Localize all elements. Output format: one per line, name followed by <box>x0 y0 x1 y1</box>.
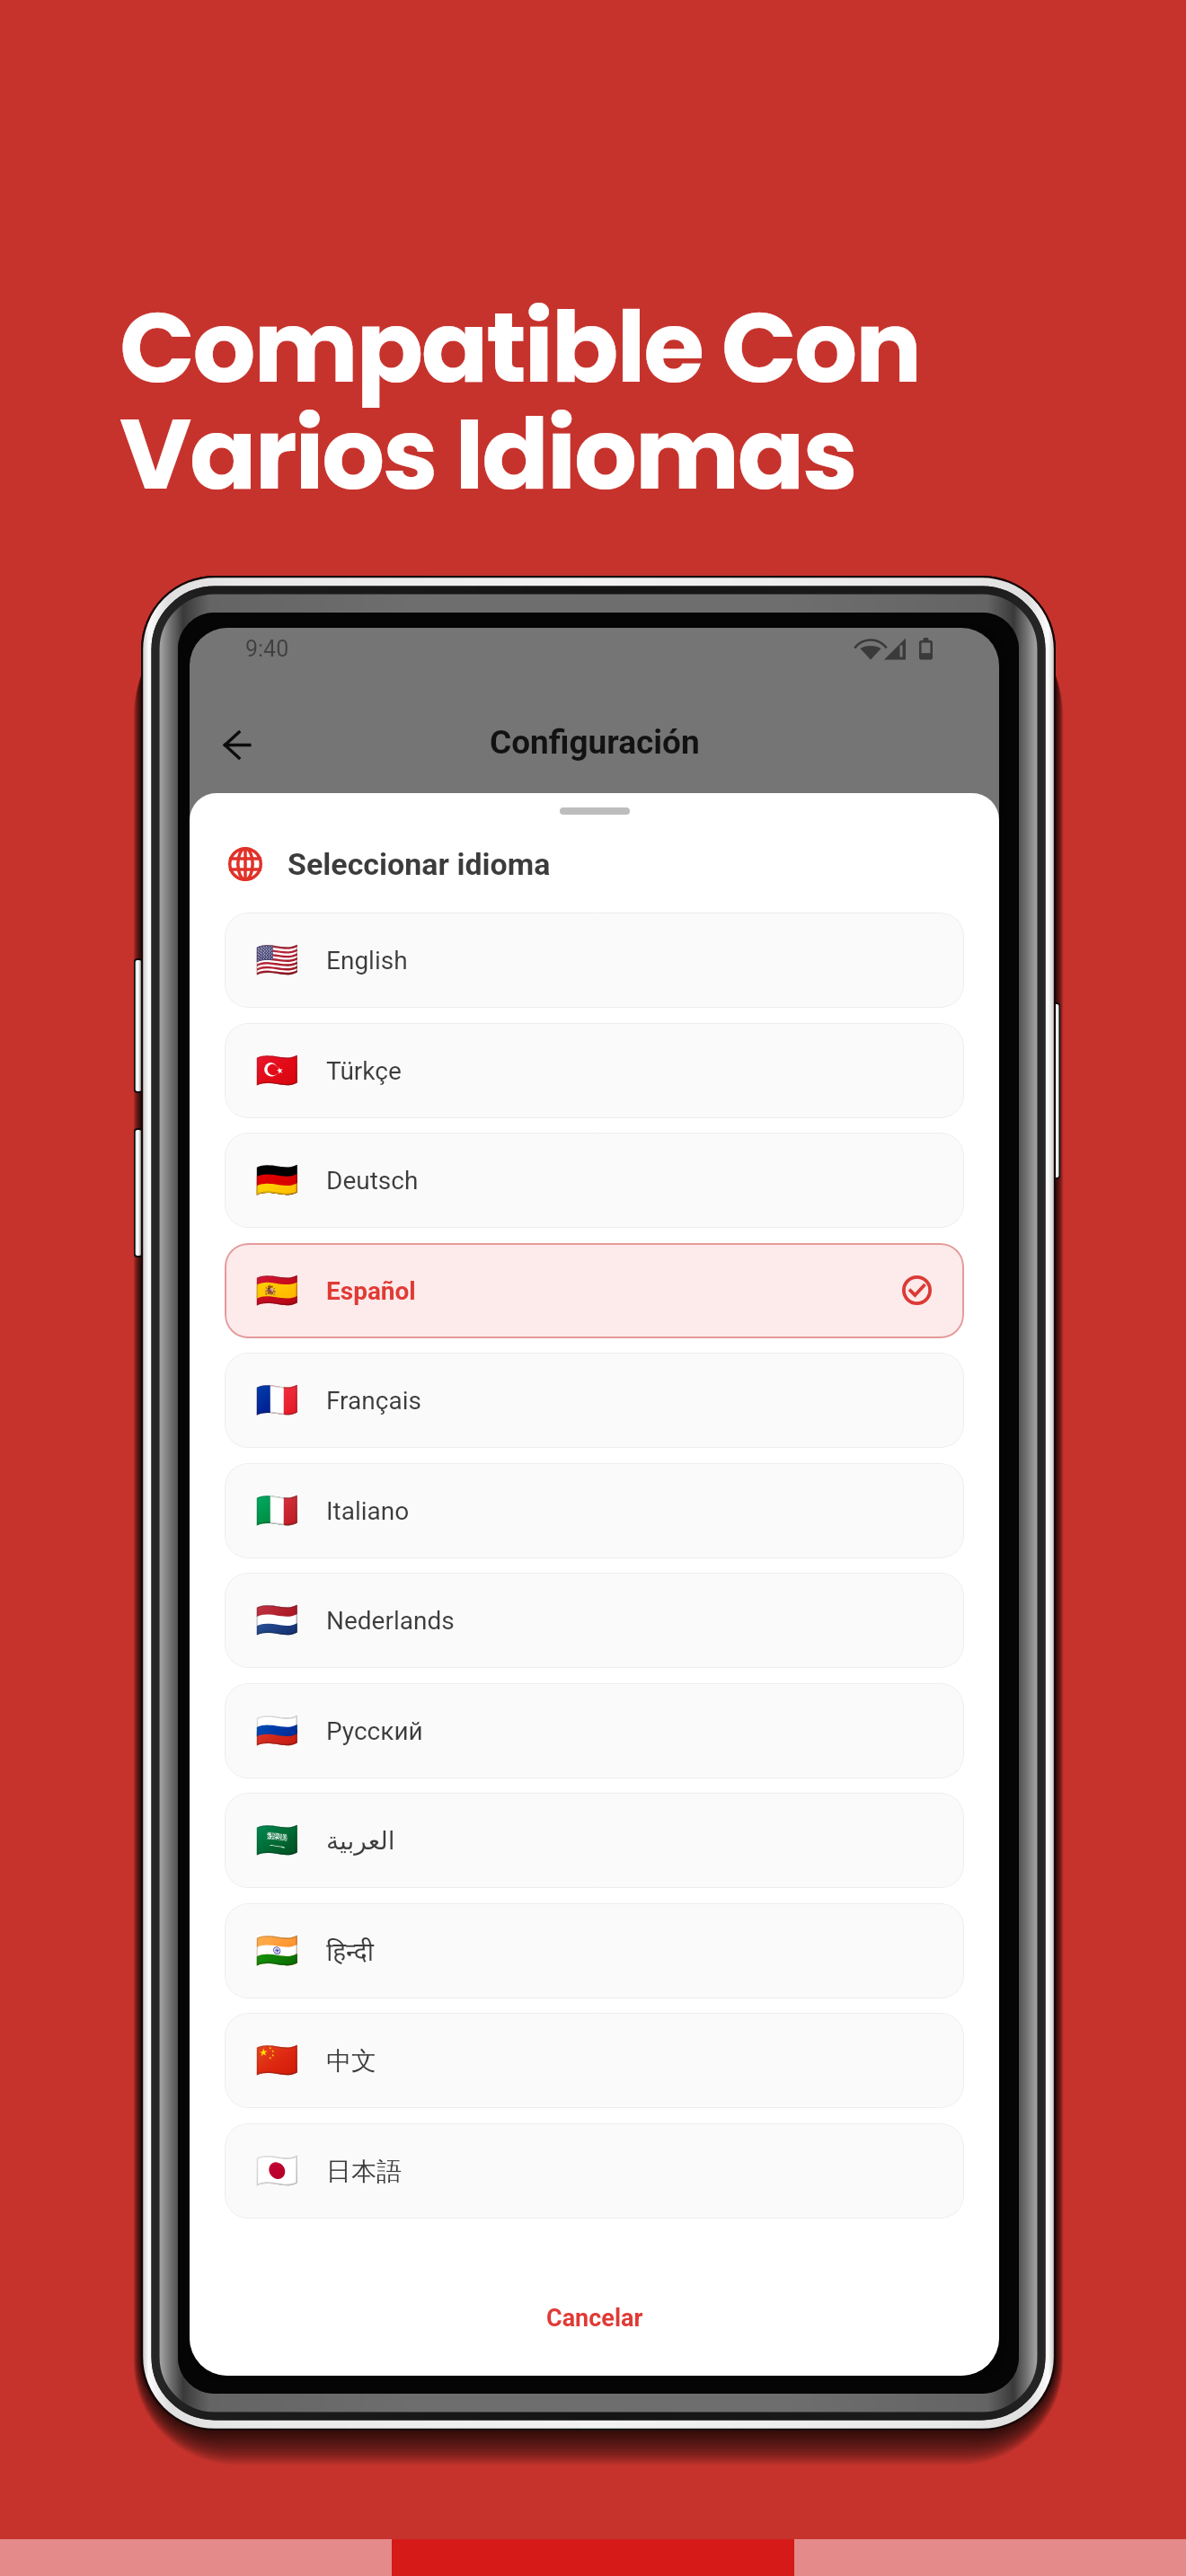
button[interactable]: Cancelar <box>546 2304 643 2333</box>
button[interactable]: 🇸🇦 <box>225 1793 964 1888</box>
staticText: 日本語 <box>326 2156 402 2187</box>
staticText: 🇯🇵 <box>255 2150 299 2192</box>
staticText: Italiano <box>326 1496 410 1526</box>
staticText: 🇮🇳 <box>255 1930 299 1972</box>
staticText: 🇹🇷 <box>255 1050 299 1091</box>
button[interactable]: 🇩🇪 <box>225 1133 964 1228</box>
button[interactable]: 🇮🇹 <box>225 1463 964 1558</box>
staticText: Seleccionar idioma <box>288 846 551 882</box>
staticText: 🇺🇸 <box>255 940 299 981</box>
button[interactable]: 🇳🇱 <box>225 1573 964 1668</box>
button[interactable]: Back <box>206 713 270 778</box>
button[interactable]: 🇪🇸 <box>225 1243 964 1338</box>
staticText: Türkçe <box>326 1056 402 1086</box>
staticText: 🇸🇦 <box>255 1820 299 1861</box>
staticText: Compatible Con Varios Idiomas <box>119 278 920 524</box>
staticText: 🇷🇺 <box>255 1710 299 1751</box>
button[interactable]: 🇹🇷 <box>225 1023 964 1118</box>
staticText: Русский <box>326 1716 423 1746</box>
staticText: 🇫🇷 <box>255 1380 299 1421</box>
staticText: Español <box>326 1276 416 1306</box>
staticText: 中文 <box>326 2045 376 2077</box>
staticText: Nederlands <box>326 1606 455 1636</box>
staticText: العربية <box>326 1826 395 1856</box>
staticText: English <box>326 946 408 975</box>
staticText: हिन्दी <box>326 1934 374 1968</box>
staticText: 🇪🇸 <box>255 1270 299 1311</box>
staticText: Cancelar <box>546 2304 643 2333</box>
staticText: 🇨🇳 <box>255 2040 299 2081</box>
staticText: 🇮🇹 <box>255 1490 299 1531</box>
button[interactable]: 🇨🇳 <box>225 2013 964 2108</box>
button[interactable]: 🇮🇳 <box>225 1903 964 1998</box>
staticText: Français <box>326 1386 421 1416</box>
staticText: Configuración <box>490 723 700 762</box>
staticText: 9:40 <box>245 636 289 662</box>
staticText: 🇩🇪 <box>255 1160 299 1201</box>
button[interactable]: 🇯🇵 <box>225 2123 964 2219</box>
button[interactable]: 🇷🇺 <box>225 1683 964 1778</box>
button[interactable]: 🇫🇷 <box>225 1353 964 1448</box>
staticText: 🇳🇱 <box>255 1600 299 1641</box>
button[interactable]: 🇺🇸 <box>225 913 964 1008</box>
staticText: Deutsch <box>326 1166 419 1195</box>
